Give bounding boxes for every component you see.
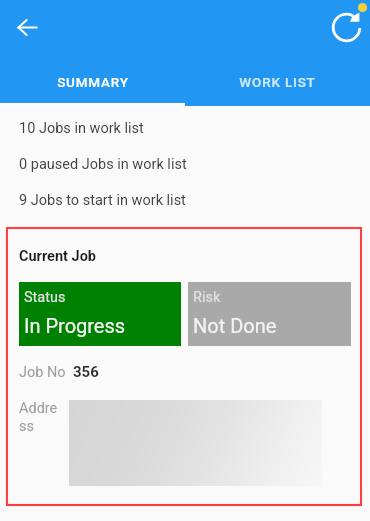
button[interactable]: Back [0, 0, 54, 54]
button[interactable]: WORK LIST [185, 58, 370, 106]
staticText: Address [19, 400, 59, 435]
staticText: Not Done [193, 314, 277, 337]
button[interactable]: 10 Jobs in work list [0, 110, 370, 146]
staticText: 9 Jobs to start in work list [19, 192, 186, 209]
button[interactable]: Refresh [316, 0, 370, 54]
staticText: Risk [193, 289, 221, 306]
staticText: Current Job [19, 248, 97, 265]
staticText: WORK LIST [239, 74, 316, 90]
staticText: 10 Jobs in work list [19, 120, 144, 137]
staticText: In Progress [24, 314, 126, 337]
button[interactable]: 9 Jobs to start in work list [0, 182, 370, 218]
staticText: Status [24, 289, 66, 306]
staticText: 356 [73, 363, 99, 381]
staticText: Job No [19, 364, 66, 381]
staticText: 0 paused Jobs in work list [19, 156, 187, 173]
button[interactable]: SUMMARY [0, 58, 185, 106]
button[interactable]: 0 paused Jobs in work list [0, 146, 370, 182]
staticText: SUMMARY [57, 74, 129, 90]
